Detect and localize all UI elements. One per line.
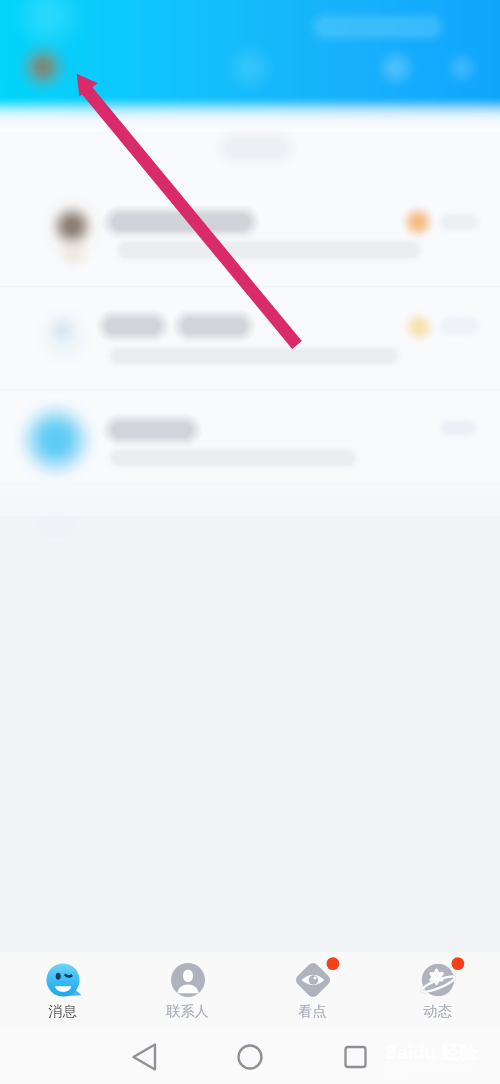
staticText: 动态 — [423, 1002, 452, 1020]
button[interactable]: 消息 — [0, 952, 125, 1028]
staticText: 看点 — [298, 1002, 327, 1020]
staticText: 消息 — [48, 1002, 77, 1020]
button[interactable]: 联系人 — [125, 952, 250, 1028]
staticText: 联系人 — [166, 1002, 209, 1020]
button[interactable]: 动态 — [375, 952, 500, 1028]
button[interactable]: 看点 — [250, 952, 375, 1028]
